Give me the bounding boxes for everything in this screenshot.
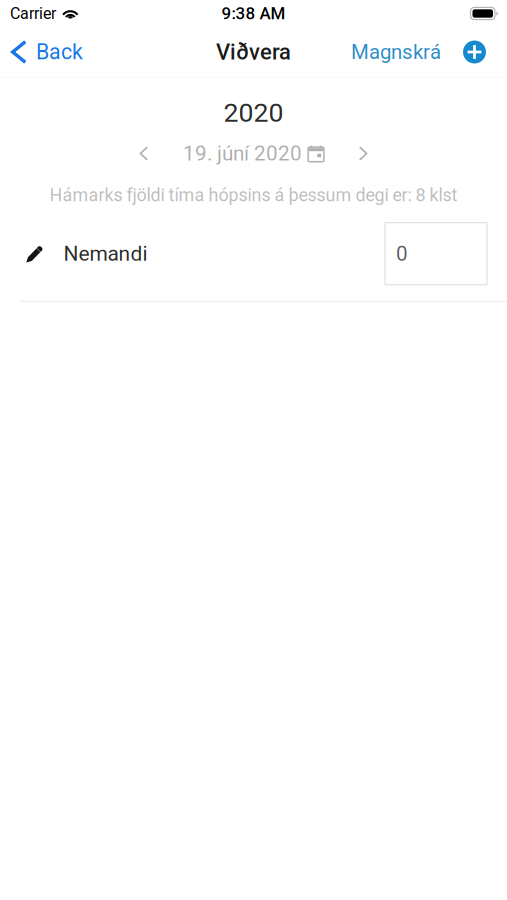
staticText: Back: [36, 39, 83, 64]
staticText: Carrier: [10, 4, 56, 23]
staticText: Hámarks fjöldi tíma hópsins á þessum deg…: [49, 185, 457, 206]
button[interactable]: Next day: [347, 141, 379, 166]
button[interactable]: Add: [441, 40, 507, 63]
staticText: 0: [396, 242, 408, 266]
button[interactable]: Previous day: [128, 141, 160, 166]
staticText: 19. júní 2020: [183, 141, 302, 166]
staticText: 2020: [223, 97, 283, 128]
staticText: Magnskrá: [351, 40, 441, 64]
staticText: Viðvera: [216, 39, 291, 65]
staticText: Nemandi: [63, 241, 147, 266]
button[interactable]: Magnskrá: [351, 36, 441, 68]
staticText: 9:38 AM: [221, 4, 285, 23]
button[interactable]: Back: [0, 36, 83, 67]
